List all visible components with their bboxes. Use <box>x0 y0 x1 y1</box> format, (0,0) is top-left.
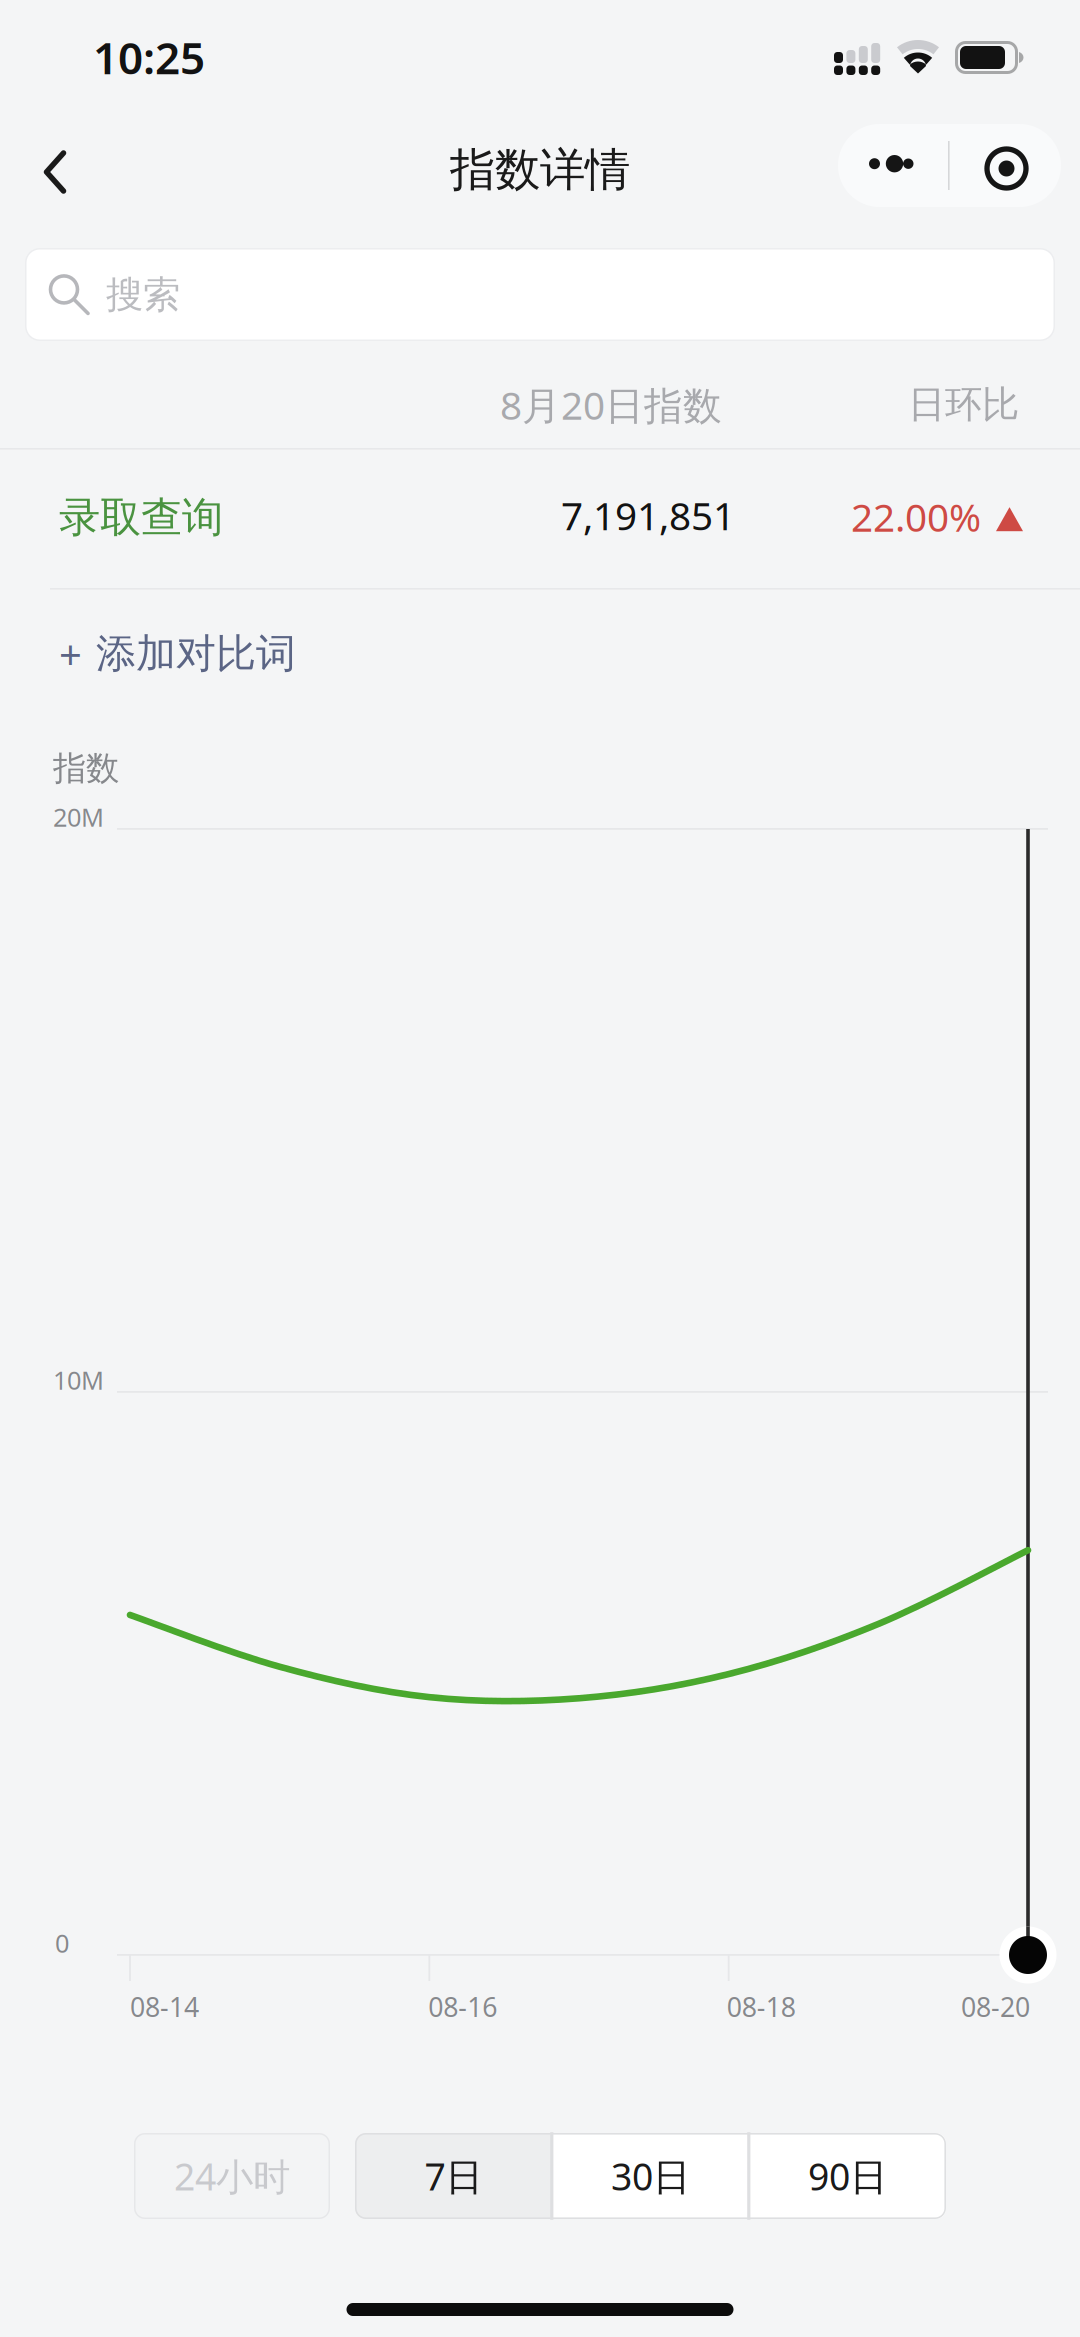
staticText: 录取查询 <box>59 492 223 543</box>
staticText: 10:25 <box>93 28 205 86</box>
staticText: 90日 <box>808 2151 887 2201</box>
staticText: 08-14 <box>130 1989 199 2024</box>
staticText: 10M <box>53 1363 104 1397</box>
staticText: 08-18 <box>727 1989 796 2024</box>
staticText: 20M <box>53 800 104 834</box>
button[interactable]: 24小时 <box>134 2133 330 2219</box>
button[interactable]: 更多 <box>838 124 1061 207</box>
staticText: 24小时 <box>174 2151 290 2201</box>
staticText: + <box>59 627 82 680</box>
button[interactable]: + <box>0 590 1080 742</box>
button[interactable]: 30日 <box>552 2133 749 2219</box>
button[interactable]: 90日 <box>749 2133 946 2219</box>
staticText: 搜索 <box>106 272 180 318</box>
staticText: 08-20 <box>961 1989 1030 2024</box>
staticText: 0 <box>55 1926 69 1960</box>
staticText: 22.00% <box>851 491 981 542</box>
button[interactable]: 返回 <box>18 129 92 215</box>
button[interactable]: 7日 <box>355 2133 552 2219</box>
staticText: 指数详情 <box>450 142 630 198</box>
staticText: 7,191,851 <box>561 489 735 541</box>
staticText: 8月20日指数 <box>500 379 722 430</box>
button[interactable]: 搜索 <box>25 248 1055 341</box>
staticText: 30日 <box>611 2151 690 2201</box>
staticText: 08-16 <box>428 1989 497 2024</box>
staticText: 日环比 <box>908 382 1019 428</box>
staticText: 添加对比词 <box>96 629 296 678</box>
staticText: 7日 <box>424 2151 482 2201</box>
staticText: 指数 <box>53 748 119 789</box>
